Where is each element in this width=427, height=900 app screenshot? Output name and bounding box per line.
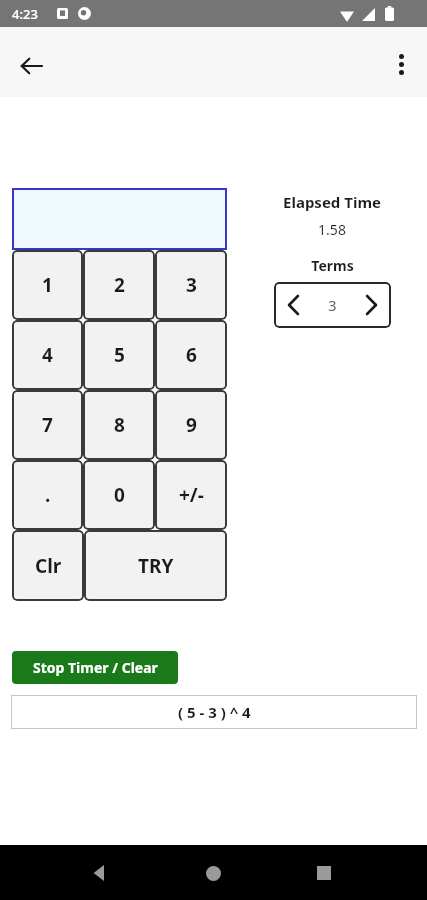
staticText: 1 (42, 272, 53, 298)
staticText: 2 (114, 272, 125, 298)
button[interactable]: ( 5 - 3 ) ^ 4 (11, 695, 417, 729)
button[interactable] (12, 188, 227, 250)
staticText: Terms (311, 256, 354, 275)
staticText: 6 (186, 342, 197, 368)
button[interactable]: 9 (155, 390, 227, 460)
button[interactable]: Stop Timer / Clear (12, 651, 178, 684)
button[interactable]: Home (199, 859, 227, 887)
button[interactable]: 1 (12, 250, 83, 320)
staticText: 4:23 (12, 5, 38, 23)
button[interactable]: 7 (12, 390, 83, 460)
button[interactable]: . (12, 460, 83, 530)
button[interactable]: Clr (12, 530, 84, 601)
staticText: 5 (114, 342, 125, 368)
button[interactable]: More options (382, 45, 420, 83)
staticText: 8 (114, 412, 125, 438)
button[interactable]: 8 (83, 390, 155, 460)
button[interactable]: 0 (83, 460, 155, 530)
button[interactable]: Recent apps (310, 859, 338, 887)
staticText: Stop Timer / Clear (33, 658, 158, 677)
button[interactable]: Increase terms (352, 282, 391, 328)
button[interactable]: TRY (84, 530, 227, 601)
staticText: TRY (138, 553, 174, 579)
button[interactable]: 3 (155, 250, 227, 320)
staticText: . (45, 482, 51, 508)
staticText: 3 (328, 295, 337, 315)
button[interactable]: Back (86, 859, 114, 887)
staticText: 4 (42, 342, 53, 368)
button[interactable]: 5 (83, 320, 155, 390)
staticText: 7 (42, 412, 53, 438)
staticText: 1.58 (318, 220, 346, 239)
staticText: +/- (179, 482, 204, 508)
staticText: 3 (186, 272, 197, 298)
staticText: Elapsed Time (283, 192, 381, 212)
staticText: 9 (186, 412, 197, 438)
button[interactable]: 4 (12, 320, 83, 390)
button[interactable]: +/- (155, 460, 227, 530)
staticText: 0 (114, 482, 125, 508)
button[interactable]: 6 (155, 320, 227, 390)
button[interactable]: 2 (83, 250, 155, 320)
button[interactable]: Decrease terms (274, 282, 313, 328)
staticText: Clr (35, 553, 62, 579)
staticText: ( 5 - 3 ) ^ 4 (178, 702, 251, 722)
button[interactable]: Back (10, 45, 52, 87)
